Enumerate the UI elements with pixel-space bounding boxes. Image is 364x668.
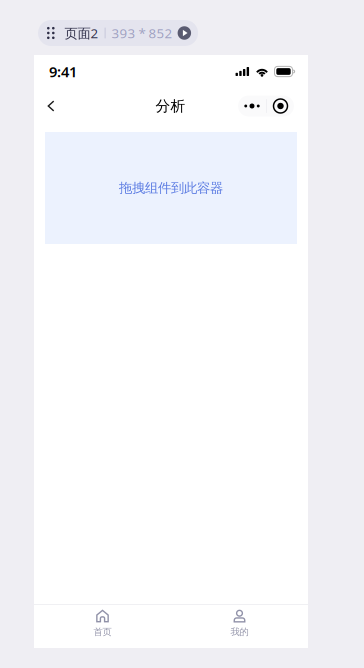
staticText: 393 * 852	[112, 24, 173, 42]
button[interactable]: Close	[267, 95, 294, 116]
staticText: 9:41	[49, 62, 77, 81]
staticText: 我的	[230, 626, 248, 637]
staticText: 首页	[93, 626, 111, 637]
staticText: 页面2	[65, 24, 99, 42]
staticText: 拖拽组件到此容器	[119, 180, 223, 196]
button[interactable]: 我的	[171, 604, 308, 648]
button[interactable]: 页面2	[38, 20, 198, 46]
staticText: 分析	[155, 97, 185, 115]
button[interactable]: More	[238, 95, 266, 116]
button[interactable]: Back	[47, 90, 75, 122]
button[interactable]: 首页	[34, 604, 171, 648]
